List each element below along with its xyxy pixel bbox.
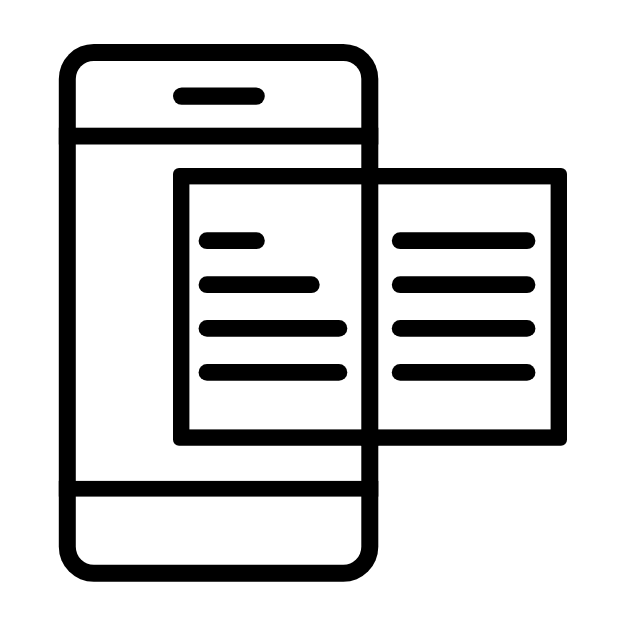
button[interactable]: Mobile article reader <box>0 0 626 626</box>
